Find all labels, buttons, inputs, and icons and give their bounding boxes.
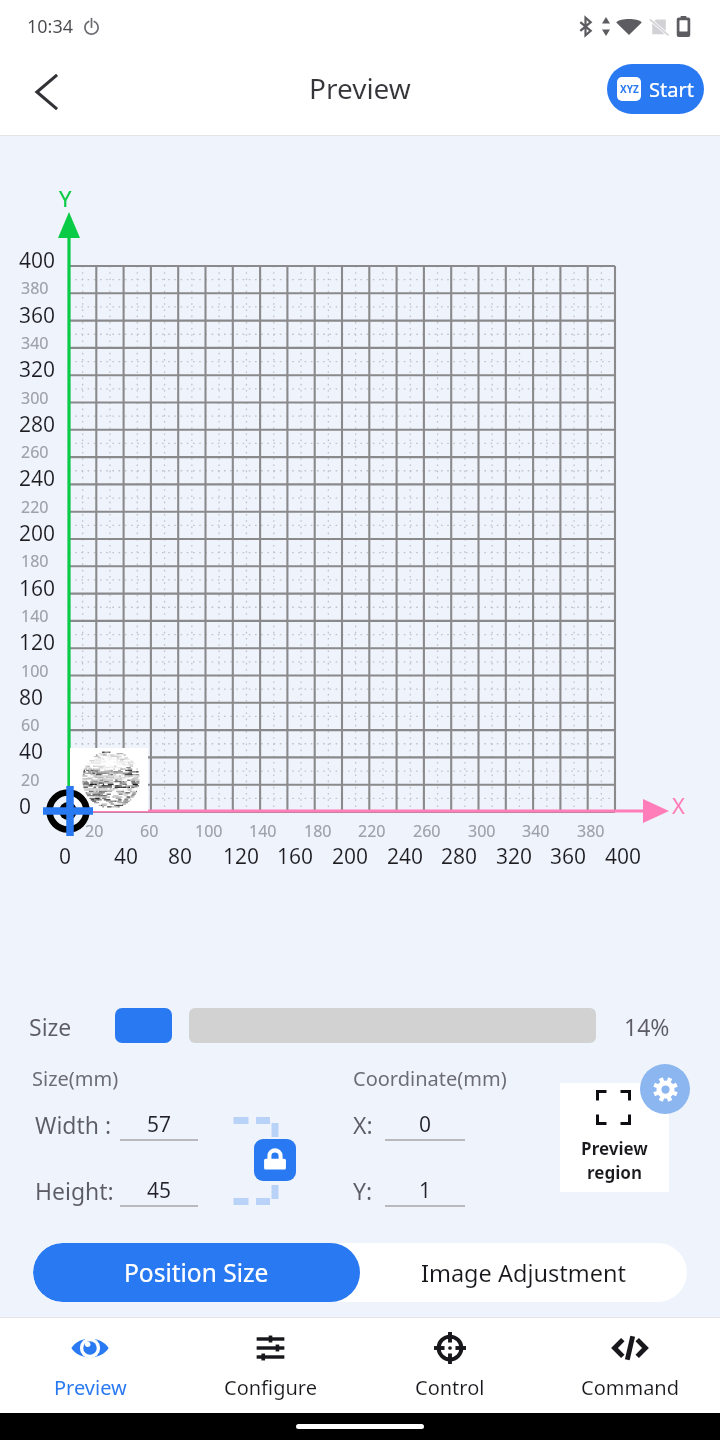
staticText: 280: [19, 410, 56, 439]
staticText: 140: [249, 820, 277, 842]
staticText: 100: [21, 660, 49, 682]
button[interactable]: Command: [540, 1317, 720, 1413]
staticText: 180: [21, 550, 49, 572]
staticText: Preview: [54, 1374, 127, 1401]
button[interactable]: Origin: [39, 781, 99, 841]
staticText: 1: [419, 1176, 432, 1205]
staticText: 200: [332, 842, 369, 871]
staticText: 380: [21, 277, 49, 299]
staticText: X: [672, 790, 685, 820]
button[interactable]: Settings: [640, 1064, 690, 1114]
staticText: 260: [21, 441, 49, 463]
staticText: 280: [441, 842, 478, 871]
staticText: 60: [21, 714, 40, 736]
staticText: 340: [21, 332, 49, 354]
button[interactable]: Image Adjustment: [360, 1243, 687, 1302]
staticText: Width :: [35, 1109, 112, 1140]
staticText: 180: [304, 820, 332, 842]
button[interactable]: Size slider value: [115, 1008, 172, 1043]
staticText: 320: [19, 355, 56, 384]
staticText: 40: [114, 842, 139, 871]
staticText: 57: [147, 1110, 172, 1139]
staticText: 240: [19, 464, 56, 493]
staticText: 260: [413, 820, 441, 842]
staticText: 120: [223, 842, 260, 871]
staticText: 20: [85, 820, 104, 842]
staticText: 120: [19, 628, 56, 657]
staticText: 360: [550, 842, 587, 871]
staticText: 0: [59, 842, 72, 871]
staticText: Size(mm): [32, 1065, 119, 1092]
staticText: 360: [19, 301, 56, 330]
staticText: 340: [522, 820, 550, 842]
staticText: X:: [353, 1109, 373, 1140]
staticText: 10:34: [27, 14, 74, 39]
button[interactable]: Control: [360, 1317, 540, 1413]
staticText: Y:: [353, 1175, 373, 1206]
staticText: 400: [19, 246, 56, 275]
button[interactable]: Back: [14, 61, 80, 127]
staticText: Preview region: [560, 1137, 669, 1184]
staticText: 20: [21, 769, 40, 791]
button[interactable]: Preview: [0, 1317, 180, 1413]
staticText: 320: [496, 842, 533, 871]
staticText: Y: [59, 183, 72, 213]
button[interactable]: Position Size: [33, 1243, 360, 1302]
staticText: 160: [19, 574, 56, 603]
staticText: 0: [419, 1110, 432, 1139]
button[interactable]: Configure: [180, 1317, 360, 1413]
staticText: XYZ: [620, 82, 639, 96]
staticText: 220: [21, 496, 49, 518]
staticText: Command: [581, 1374, 680, 1401]
staticText: 160: [277, 842, 314, 871]
staticText: 80: [19, 683, 44, 712]
staticText: Coordinate(mm): [353, 1065, 507, 1092]
staticText: 100: [195, 820, 223, 842]
staticText: 14%: [624, 1011, 670, 1042]
staticText: 60: [140, 820, 159, 842]
staticText: Start: [649, 76, 694, 103]
staticText: 300: [468, 820, 496, 842]
staticText: Size: [29, 1011, 72, 1042]
staticText: 300: [21, 387, 49, 409]
staticText: 0: [19, 792, 32, 821]
staticText: 220: [358, 820, 386, 842]
staticText: Configure: [224, 1374, 317, 1401]
staticText: 400: [605, 842, 642, 871]
staticText: Position Size: [124, 1256, 269, 1289]
staticText: 45: [147, 1176, 172, 1205]
button[interactable]: XYZ: [607, 64, 704, 114]
staticText: 80: [168, 842, 193, 871]
staticText: 200: [19, 519, 56, 548]
staticText: 40: [19, 737, 44, 766]
staticText: Height:: [35, 1175, 114, 1206]
button[interactable]: Preview region: [560, 1083, 669, 1192]
button[interactable]: Lock aspect ratio: [254, 1139, 296, 1181]
staticText: Image Adjustment: [421, 1257, 626, 1289]
staticText: Preview: [309, 69, 411, 107]
staticText: Control: [415, 1374, 485, 1401]
staticText: 240: [387, 842, 424, 871]
staticText: 140: [21, 605, 49, 627]
staticText: 380: [577, 820, 605, 842]
